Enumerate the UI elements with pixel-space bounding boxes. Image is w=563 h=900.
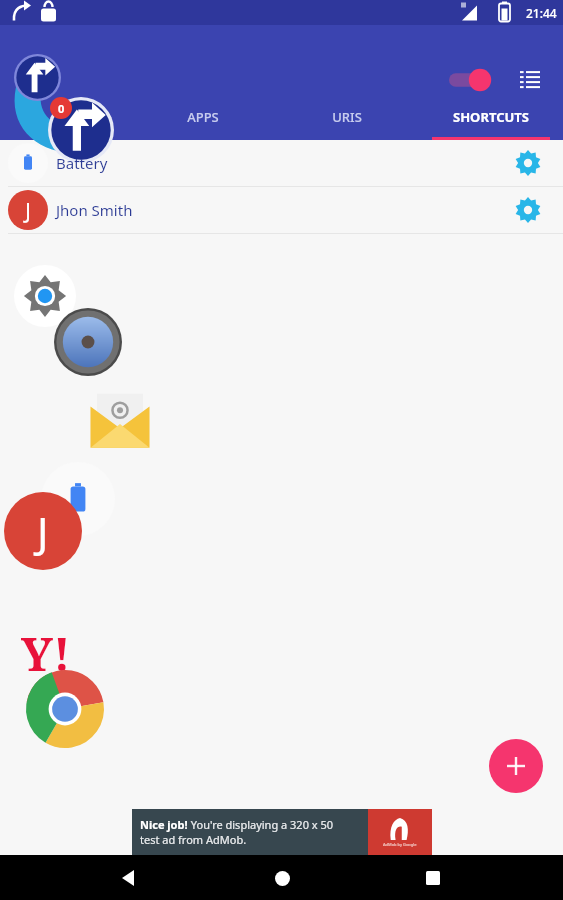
staticText: SHORTCUTS: [453, 108, 529, 126]
button[interactable]: Yahoo shortcut: [6, 622, 86, 676]
button[interactable]: Recent apps: [411, 856, 455, 900]
staticText: Y!: [21, 622, 71, 676]
button[interactable]: Battery: [0, 140, 563, 186]
button[interactable]: Battery: [41, 462, 115, 536]
button[interactable]: Nice job!: [132, 809, 432, 855]
staticText: 21:44: [526, 5, 557, 21]
button[interactable]: URIS: [275, 94, 419, 140]
staticText: AdMob by Google: [383, 842, 417, 847]
button[interactable]: Email shortcut: [84, 385, 156, 457]
staticText: APPS: [187, 108, 219, 126]
button[interactable]: SHORTCUTS: [419, 94, 563, 140]
staticText: URIS: [332, 108, 362, 126]
staticText: 0: [58, 101, 65, 116]
staticText: J: [37, 503, 49, 560]
button[interactable]: Shortcut app icon: [48, 97, 114, 163]
button[interactable]: Settings for Jhon Smith: [511, 193, 545, 227]
staticText: test ad from AdMob.: [140, 832, 247, 847]
staticText: J: [25, 195, 32, 225]
button[interactable]: Battery: [8, 143, 48, 183]
button[interactable]: Back: [108, 856, 152, 900]
button[interactable]: J: [0, 187, 563, 233]
button[interactable]: Settings shortcut: [14, 265, 76, 327]
button[interactable]: Volume shortcut: [54, 308, 122, 376]
staticText: Battery: [56, 153, 511, 173]
staticText: You're displaying a 320 x 50: [188, 817, 334, 832]
button[interactable]: J: [4, 492, 82, 570]
button[interactable]: Home: [260, 856, 304, 900]
button[interactable]: APPS: [131, 94, 275, 140]
staticText: Nice job!: [140, 817, 188, 832]
button[interactable]: Enable service: [447, 66, 497, 94]
button[interactable]: Settings for Battery: [511, 146, 545, 180]
button[interactable]: Add shortcut: [489, 739, 543, 793]
button[interactable]: Chrome shortcut: [26, 670, 104, 748]
button[interactable]: List view: [513, 63, 547, 97]
button[interactable]: Shortcut app icon: [14, 54, 61, 101]
button[interactable]: J: [8, 190, 48, 230]
staticText: Jhon Smith: [56, 200, 511, 220]
